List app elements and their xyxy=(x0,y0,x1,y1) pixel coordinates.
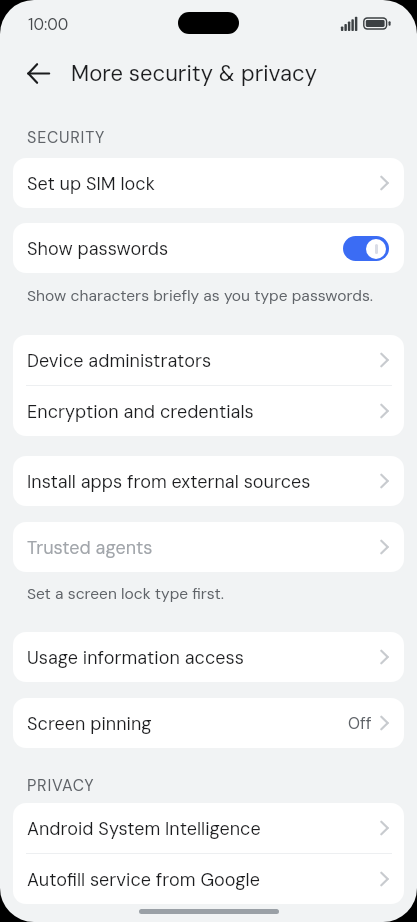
staticText: Screen pinning xyxy=(27,712,348,735)
staticText: Usage information access xyxy=(27,646,379,669)
staticText: Set up SIM lock xyxy=(27,172,379,195)
staticText: Encryption and credentials xyxy=(27,400,379,423)
staticText: Device administrators xyxy=(27,349,379,372)
staticText: Android System Intelligence xyxy=(27,817,379,840)
button[interactable]: Set up SIM lock xyxy=(13,158,404,208)
button[interactable]: Install apps from external sources xyxy=(13,456,404,506)
staticText: 10:00 xyxy=(28,14,69,35)
button[interactable]: Autofill service from Google xyxy=(13,854,404,904)
staticText: Install apps from external sources xyxy=(27,470,379,493)
staticText: Off xyxy=(348,713,372,734)
button[interactable]: Show passwords xyxy=(13,223,404,273)
button[interactable]: Usage information access xyxy=(13,632,404,682)
staticText: Set a screen lock type first. xyxy=(27,584,224,604)
button[interactable]: Screen pinning xyxy=(13,698,404,748)
button[interactable]: Android System Intelligence xyxy=(13,803,404,853)
staticText: Trusted agents xyxy=(27,536,379,559)
button[interactable]: Device administrators xyxy=(13,335,404,385)
button[interactable]: Trusted agents xyxy=(13,522,404,572)
staticText: Autofill service from Google xyxy=(27,868,379,891)
button[interactable]: Encryption and credentials xyxy=(13,386,404,436)
staticText: SECURITY xyxy=(27,127,105,148)
button[interactable]: Back xyxy=(17,52,59,94)
staticText: PRIVACY xyxy=(27,775,95,796)
staticText: Show passwords xyxy=(27,237,343,260)
staticText: More security & privacy xyxy=(71,59,318,88)
staticText: Show characters briefly as you type pass… xyxy=(27,286,374,306)
